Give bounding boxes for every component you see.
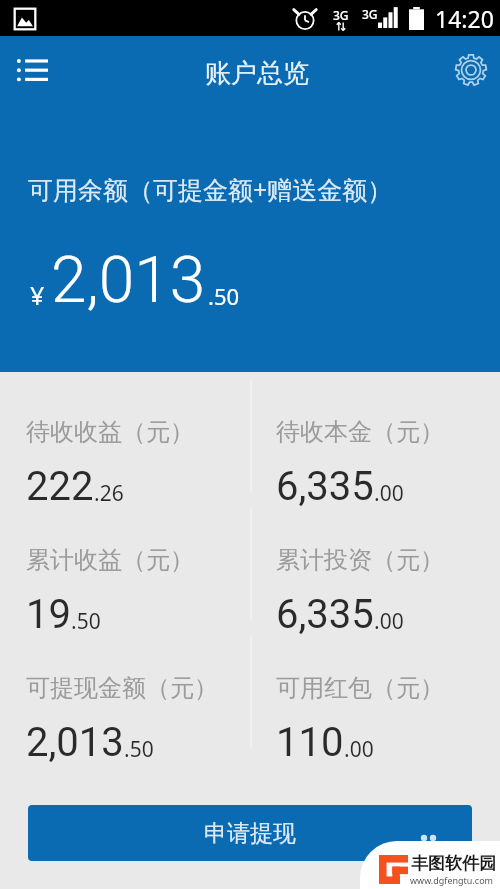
staticText: 丰图软件园 <box>411 853 496 874</box>
staticText: .26 <box>94 479 124 508</box>
staticText: 累计投资（元） <box>276 545 444 575</box>
staticText: 6,335 <box>276 463 374 510</box>
staticText: 3G <box>362 6 378 22</box>
button[interactable]: 待收收益（元） <box>0 372 250 500</box>
staticText: 222 <box>26 463 94 510</box>
staticText: 6,335 <box>276 591 374 638</box>
staticText: .00 <box>344 735 374 764</box>
button[interactable]: 待收本金（元） <box>250 372 500 500</box>
button[interactable]: 累计投资（元） <box>250 500 500 628</box>
staticText: 可提现金额（元） <box>26 673 218 703</box>
button[interactable]: 申请提现 <box>28 805 472 861</box>
staticText: 3G <box>333 7 349 23</box>
staticText: .00 <box>374 479 404 508</box>
staticText: 110 <box>276 719 344 766</box>
staticText: www.dgfengtu.com <box>410 874 494 886</box>
staticText: .00 <box>374 607 404 636</box>
button[interactable]: 可用红包（元） <box>250 628 500 756</box>
button[interactable]: 累计收益（元） <box>0 500 250 628</box>
staticText: 待收收益（元） <box>26 417 194 447</box>
staticText: 待收本金（元） <box>276 417 444 447</box>
staticText: 19 <box>26 591 71 638</box>
staticText: 可用红包（元） <box>276 673 444 703</box>
button[interactable]: Menu <box>0 40 64 104</box>
button[interactable]: Settings <box>438 41 500 103</box>
staticText: 账户总览 <box>205 57 309 90</box>
button[interactable]: 可提现金额（元） <box>0 628 250 756</box>
staticText: ¥ <box>30 278 45 312</box>
staticText: 申请提现 <box>204 819 296 848</box>
staticText: 2,013 <box>51 243 206 318</box>
staticText: .50 <box>71 607 101 636</box>
staticText: 2,013 <box>26 719 124 766</box>
staticText: .50 <box>124 735 154 764</box>
staticText: 14:20 <box>435 3 494 34</box>
staticText: 可用余额（可提金额+赠送金额） <box>28 172 393 206</box>
staticText: 累计收益（元） <box>26 545 194 575</box>
staticText: .50 <box>208 281 240 311</box>
